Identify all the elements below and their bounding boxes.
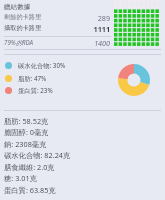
button[interactable]: 蛋白質: 23% [5, 86, 53, 94]
staticText: 79%的RDA [4, 38, 33, 46]
staticText: 碳水化合物: 30% [18, 61, 66, 69]
staticText: 膽固醇: 0毫克 [4, 127, 49, 137]
staticText: 1400 [34, 38, 110, 46]
button[interactable]: 剩餘的卡路里 [4, 13, 110, 21]
staticText: 蛋白質: 23% [18, 86, 53, 94]
staticText: 蛋白質: 63.85克 [4, 185, 56, 195]
button[interactable]: 碳水化合物: 30% [5, 61, 66, 69]
staticText: 289 [43, 13, 110, 21]
button[interactable]: 79%的RDA [4, 38, 110, 46]
staticText: 總結數據 [4, 3, 31, 11]
staticText: 1111 [43, 24, 110, 32]
staticText: 鈉: 2308毫克 [4, 139, 47, 149]
staticText: 脂肪: 47% [18, 74, 47, 82]
staticText: 剩餘的卡路里 [4, 13, 42, 21]
other: Macronutrient breakdown [118, 64, 150, 96]
other: Calorie progress grid [114, 0, 160, 47]
staticText: 脂肪: 58.52克 [4, 116, 49, 126]
button[interactable]: 攝取的卡路里 [4, 24, 110, 32]
button[interactable]: 脂肪: 47% [5, 74, 47, 82]
staticText: 攝取的卡路里 [4, 24, 42, 32]
staticText: 膳食纖維: 2.0克 [4, 162, 55, 172]
staticText: 碳水化合物: 82.24克 [4, 150, 71, 160]
staticText: 糖: 3.01克 [4, 173, 37, 183]
